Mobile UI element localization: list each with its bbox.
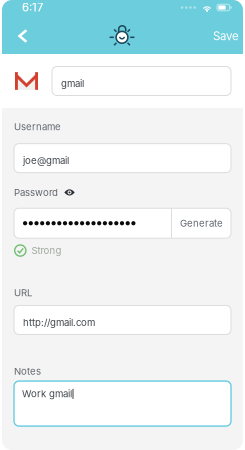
staticText: gmail bbox=[61, 78, 84, 89]
staticText: URL bbox=[14, 287, 32, 298]
staticText: Generate bbox=[180, 217, 223, 229]
button[interactable]: Save bbox=[201, 20, 243, 52]
staticText: Notes bbox=[14, 365, 41, 377]
staticText: Password bbox=[14, 187, 58, 198]
staticText: Save bbox=[213, 29, 239, 43]
staticText: Username bbox=[14, 121, 61, 133]
staticText: Strong bbox=[32, 245, 62, 256]
button[interactable]: Back bbox=[2, 20, 40, 52]
staticText: 6:17 bbox=[22, 1, 43, 14]
staticText: http://gmail.com bbox=[23, 317, 95, 328]
staticText: Work gmail bbox=[22, 388, 72, 400]
button[interactable]: Generate bbox=[172, 208, 231, 238]
staticText: joe@gmail bbox=[23, 155, 69, 166]
